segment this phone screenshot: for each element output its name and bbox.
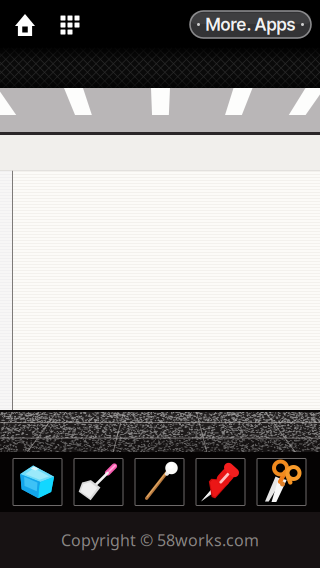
button[interactable]: All apps — [50, 4, 90, 46]
button[interactable]: More. Apps — [190, 11, 311, 38]
button[interactable] — [74, 458, 123, 505]
staticText: Copyright © 58works.com — [61, 529, 259, 551]
button[interactable] — [196, 458, 245, 505]
button[interactable] — [135, 458, 184, 505]
staticText: More. Apps — [205, 14, 295, 35]
button[interactable] — [13, 458, 62, 505]
button[interactable]: Home — [5, 4, 45, 46]
button[interactable] — [257, 458, 306, 505]
